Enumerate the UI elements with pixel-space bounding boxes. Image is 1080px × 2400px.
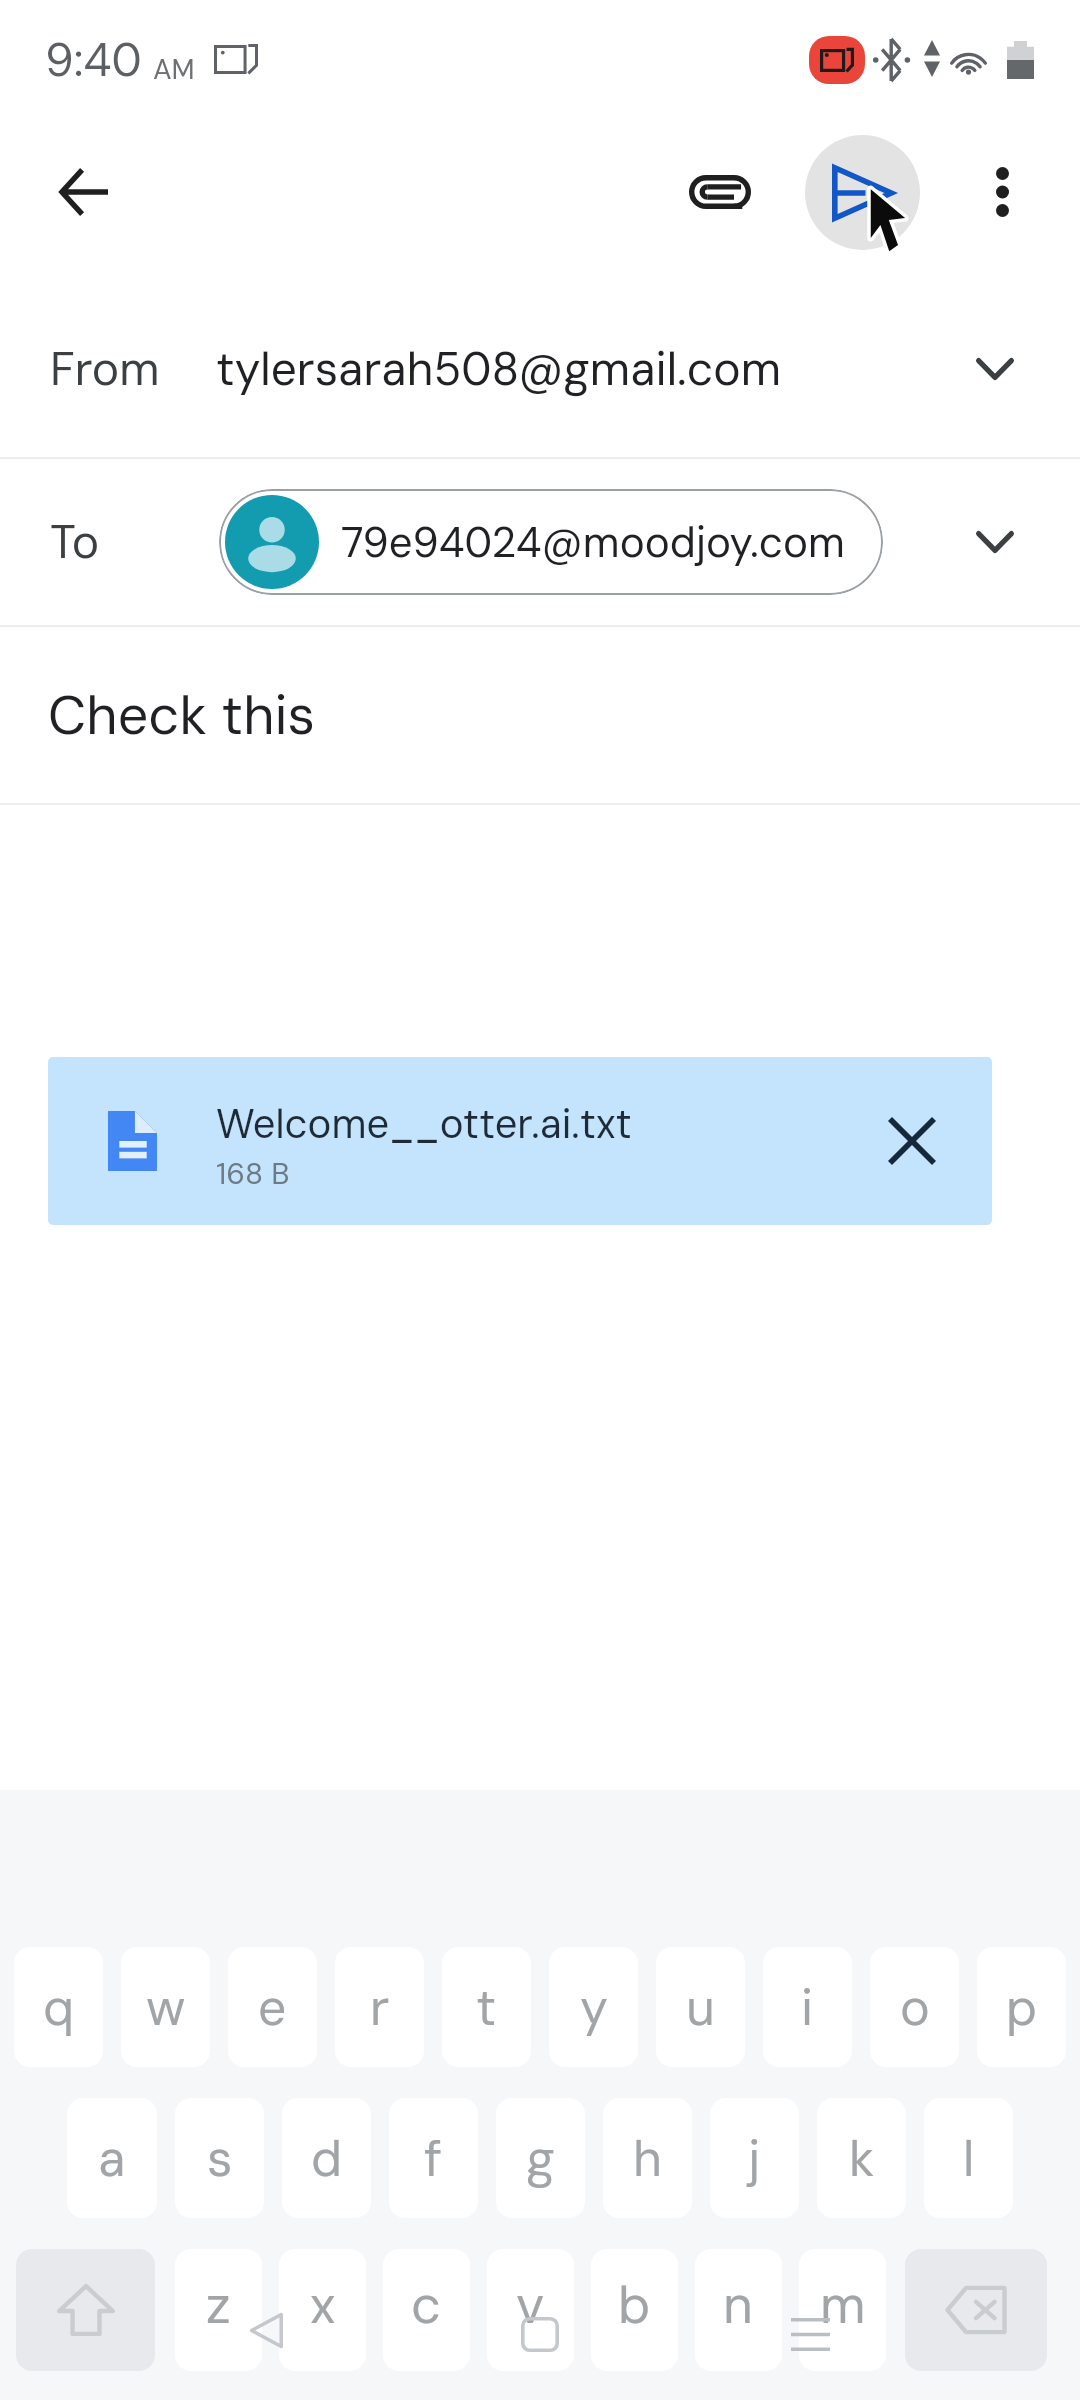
button[interactable]: Shift <box>16 2249 155 2371</box>
button[interactable]: Check this <box>0 627 1080 803</box>
button[interactable]: h <box>603 2098 692 2218</box>
button[interactable]: Navigate up <box>29 137 139 247</box>
button[interactable]: To <box>0 459 1080 625</box>
button[interactable]: Welcome__otter.ai.txt <box>48 1057 992 1225</box>
staticText: f <box>424 2126 443 2191</box>
staticText: Welcome__otter.ai.txt <box>216 1098 632 1150</box>
button[interactable]: b <box>591 2249 678 2371</box>
staticText: From <box>50 339 160 399</box>
staticText: n <box>723 2271 754 2339</box>
staticText: h <box>633 2126 663 2191</box>
button[interactable]: k <box>817 2098 906 2218</box>
staticText: i <box>801 1975 814 2040</box>
staticText: w <box>146 1975 186 2040</box>
button[interactable]: n <box>695 2249 782 2371</box>
staticText: k <box>849 2126 875 2191</box>
staticText: z <box>206 2271 231 2339</box>
staticText: r <box>370 1975 390 2040</box>
button[interactable]: From <box>0 280 1080 457</box>
staticText: g <box>526 2126 555 2191</box>
staticText: Check this <box>48 680 316 750</box>
button[interactable]: g <box>496 2098 585 2218</box>
button[interactable]: a <box>67 2098 157 2218</box>
staticText: b <box>618 2271 651 2339</box>
button[interactable]: 79e94024@moodjoy.com <box>219 489 883 595</box>
button[interactable]: p <box>977 1947 1066 2067</box>
button[interactable]: l <box>924 2098 1013 2218</box>
button[interactable]: i <box>763 1947 852 2067</box>
staticText: To <box>50 512 100 572</box>
button[interactable]: s <box>175 2098 264 2218</box>
staticText: o <box>900 1975 930 2040</box>
button[interactable]: v <box>487 2249 574 2371</box>
staticText: q <box>43 1975 75 2040</box>
button[interactable]: Send <box>805 135 920 250</box>
staticText: u <box>686 1975 715 2040</box>
staticText: y <box>580 1975 608 2040</box>
button[interactable]: f <box>389 2098 478 2218</box>
staticText: tylersarah508@gmail.com <box>216 339 782 399</box>
staticText: x <box>310 2271 336 2339</box>
button[interactable]: Remove attachment <box>864 1093 960 1189</box>
staticText: d <box>311 2126 343 2191</box>
button[interactable]: x <box>279 2249 366 2371</box>
button[interactable]: o <box>870 1947 959 2067</box>
staticText: 79e94024@moodjoy.com <box>341 515 845 570</box>
staticText: e <box>258 1975 287 2040</box>
button[interactable]: More options <box>952 142 1052 242</box>
button[interactable]: q <box>14 1947 103 2067</box>
button[interactable]: w <box>121 1947 210 2067</box>
button[interactable]: m <box>799 2249 886 2371</box>
staticText: v <box>516 2271 545 2339</box>
button[interactable]: e <box>228 1947 317 2067</box>
button[interactable]: c <box>383 2249 470 2371</box>
button[interactable]: d <box>282 2098 371 2218</box>
button[interactable]: z <box>175 2249 262 2371</box>
staticText: p <box>1006 1975 1038 2040</box>
button[interactable]: j <box>710 2098 799 2218</box>
button[interactable]: r <box>335 1947 424 2067</box>
staticText: t <box>476 1975 497 2040</box>
staticText: j <box>748 2126 761 2191</box>
staticText: s <box>207 2126 233 2191</box>
button[interactable]: Backspace <box>905 2249 1047 2371</box>
staticText: AM <box>153 51 195 87</box>
staticText: l <box>963 2126 975 2191</box>
button[interactable]: u <box>656 1947 745 2067</box>
button[interactable]: Attach file <box>665 137 775 247</box>
staticText: c <box>411 2271 442 2339</box>
button[interactable]: y <box>549 1947 638 2067</box>
button[interactable]: t <box>442 1947 531 2067</box>
staticText: a <box>98 2126 126 2191</box>
staticText: 9:40 <box>45 30 142 90</box>
staticText: m <box>820 2271 866 2339</box>
staticText: 168 B <box>216 1154 290 1193</box>
